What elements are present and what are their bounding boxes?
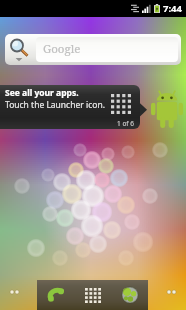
button[interactable]: Apps [74, 280, 111, 310]
staticText: 7:44 [163, 2, 182, 15]
staticText: See all your apps. [5, 87, 79, 99]
button[interactable]: Phone [37, 280, 74, 310]
staticText: Google [43, 41, 81, 57]
staticText: Touch the Launcher icon. [5, 99, 105, 111]
button[interactable]: Voice Search [5, 34, 36, 65]
button[interactable]: Browser [111, 280, 148, 310]
button[interactable]: See all your apps. [0, 85, 140, 129]
button[interactable]: Google [36, 37, 178, 62]
staticText: 1 of 6 [117, 119, 134, 128]
